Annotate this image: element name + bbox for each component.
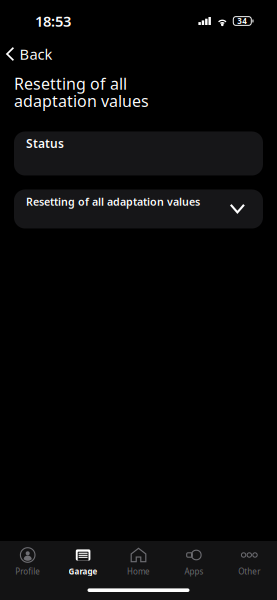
button[interactable]: Apps	[166, 541, 222, 577]
staticText: Other	[238, 566, 260, 577]
staticText: Resetting of all adaptation values	[26, 194, 200, 209]
staticText: adaptation values	[14, 90, 149, 111]
staticText: Garage	[69, 566, 98, 577]
button[interactable]: Other	[222, 541, 277, 577]
button[interactable]: Home	[111, 541, 166, 577]
staticText: Status	[26, 135, 64, 151]
button[interactable]: Back	[0, 41, 64, 67]
staticText: 18:53	[35, 11, 71, 31]
staticText: Home	[127, 566, 150, 577]
staticText: Apps	[184, 566, 203, 577]
staticText: Back	[19, 44, 52, 64]
staticText: Profile	[15, 566, 40, 577]
button[interactable]: Resetting of all adaptation values	[14, 189, 263, 228]
button[interactable]: Garage	[55, 541, 111, 577]
staticText: 34	[237, 16, 247, 26]
button[interactable]: Profile	[0, 541, 55, 577]
staticText: Resetting of all	[14, 73, 127, 94]
